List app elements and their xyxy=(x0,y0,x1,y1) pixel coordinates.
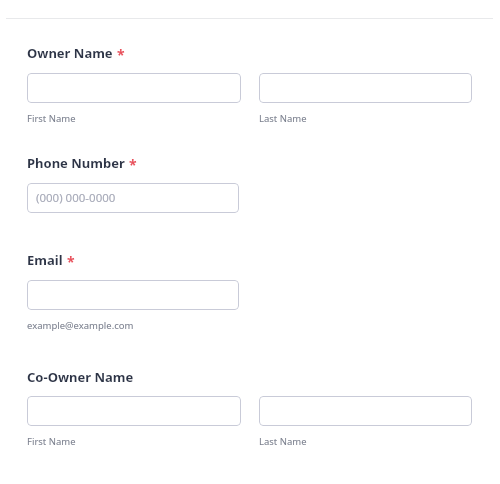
staticText: * xyxy=(129,155,137,174)
button[interactable]: Owner first name xyxy=(27,73,241,103)
staticText: Email xyxy=(27,251,63,269)
staticText: First Name xyxy=(27,112,241,125)
staticText: Owner Name xyxy=(27,44,113,62)
button[interactable]: Email address xyxy=(27,280,239,310)
staticText: * xyxy=(67,252,75,271)
button[interactable]: Co-owner last name xyxy=(259,396,472,426)
button[interactable]: Phone number xyxy=(27,183,239,213)
staticText: Co-Owner Name xyxy=(27,368,134,386)
staticText: example@example.com xyxy=(27,319,134,332)
button[interactable]: Owner last name xyxy=(259,73,472,103)
button[interactable]: Co-owner first name xyxy=(27,396,241,426)
staticText: First Name xyxy=(27,435,241,448)
staticText: Last Name xyxy=(259,112,472,125)
staticText: * xyxy=(117,45,125,64)
staticText: (000) 000-0000 xyxy=(36,190,116,206)
staticText: Last Name xyxy=(259,435,472,448)
staticText: Phone Number xyxy=(27,154,125,172)
